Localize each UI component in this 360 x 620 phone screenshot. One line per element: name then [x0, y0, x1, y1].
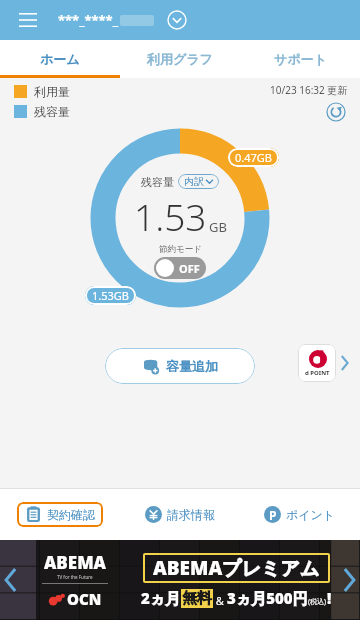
button[interactable]: 請求情報: [141, 502, 219, 527]
staticText: ABEMA: [44, 551, 106, 574]
staticText: !: [327, 588, 332, 608]
staticText: 残容量: [34, 104, 70, 119]
button[interactable]: P: [260, 502, 340, 527]
staticText: TV for the Future: [57, 574, 93, 580]
staticText: GB: [209, 218, 227, 236]
staticText: 10/23 16:32 更新: [270, 83, 348, 97]
button[interactable]: d POINT: [298, 344, 349, 382]
staticText: 利用量: [34, 84, 70, 99]
button[interactable]: Switch account: [164, 7, 190, 33]
staticText: 3ヵ月500円: [227, 588, 308, 608]
staticText: ABEMAプレミアム: [153, 555, 320, 581]
staticText: 0.47GB: [235, 150, 272, 165]
button[interactable]: 利用グラフ: [120, 40, 240, 78]
staticText: 無料: [182, 589, 212, 608]
staticText: 請求情報: [167, 507, 215, 522]
button[interactable]: OFF: [154, 257, 206, 279]
staticText: サポート: [274, 51, 327, 67]
button[interactable]: ABEMA premium advertisement: [0, 540, 360, 620]
staticText: P: [269, 507, 277, 523]
staticText: 残容量: [141, 175, 174, 189]
button[interactable]: ホーム: [0, 40, 120, 78]
button[interactable]: 内訳: [178, 174, 219, 189]
staticText: 2ヵ月: [141, 588, 181, 608]
staticText: 1.53: [134, 191, 207, 241]
button[interactable]: サポート: [240, 40, 360, 78]
button[interactable]: Menu: [12, 4, 44, 36]
staticText: 容量追加: [166, 358, 218, 374]
staticText: (税込): [308, 597, 327, 607]
button[interactable]: 契約確認: [17, 502, 103, 527]
button[interactable]: 容量追加: [105, 348, 255, 384]
staticText: OCN: [67, 589, 102, 609]
staticText: 利用グラフ: [147, 51, 213, 67]
staticText: 内訳: [184, 175, 204, 188]
staticText: 1.53GB: [92, 288, 129, 303]
staticText: ***_****_: [58, 11, 119, 29]
staticText: ポイント: [286, 507, 336, 522]
button[interactable]: Refresh: [324, 100, 348, 124]
staticText: 契約確認: [47, 507, 95, 522]
staticText: ホーム: [40, 51, 80, 67]
staticText: &: [213, 593, 227, 608]
staticText: d POINT: [305, 369, 330, 377]
staticText: OFF: [179, 261, 200, 276]
staticText: 節約モード: [159, 244, 202, 255]
